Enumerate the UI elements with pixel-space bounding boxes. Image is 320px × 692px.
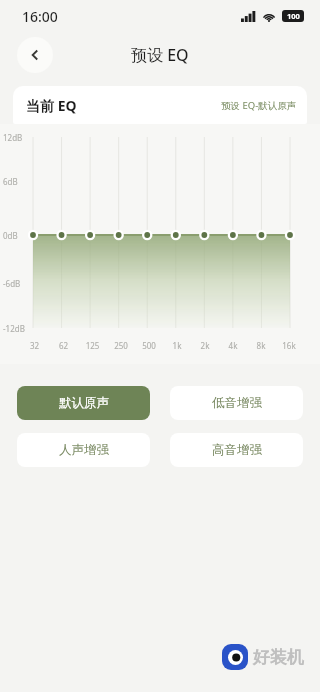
staticText: -12dB [3, 323, 31, 334]
staticText: -6dB [3, 278, 31, 289]
staticText: 6dB [3, 176, 31, 187]
staticText: 低音增强 [212, 395, 262, 411]
staticText: 2k [191, 340, 219, 351]
button[interactable]: 高音增强 [170, 433, 303, 467]
button[interactable]: 默认原声 [17, 386, 150, 420]
button[interactable]: 低音增强 [170, 386, 303, 420]
staticText: 当前 EQ [26, 96, 77, 115]
staticText: 4k [219, 340, 247, 351]
staticText: 预设 EQ-默认原声 [221, 99, 297, 112]
staticText: 预设 EQ [131, 44, 189, 66]
staticText: 100 [287, 11, 300, 21]
staticText: 人声增强 [59, 442, 109, 458]
staticText: 62 [49, 340, 78, 351]
staticText: 默认原声 [59, 395, 109, 411]
staticText: 125 [78, 340, 107, 351]
staticText: 0dB [3, 230, 31, 241]
button[interactable]: 当前 EQ [13, 86, 307, 124]
button[interactable]: Back [17, 37, 53, 73]
staticText: 8k [247, 340, 275, 351]
staticText: 16k [275, 340, 303, 351]
staticText: 250 [107, 340, 135, 351]
button[interactable]: 人声增强 [17, 433, 150, 467]
staticText: 32 [20, 340, 49, 351]
staticText: 高音增强 [212, 442, 262, 458]
staticText: 16:00 [22, 7, 58, 26]
staticText: 好装机 [253, 647, 304, 668]
staticText: 1k [163, 340, 191, 351]
staticText: 500 [135, 340, 163, 351]
staticText: 12dB [3, 132, 31, 143]
